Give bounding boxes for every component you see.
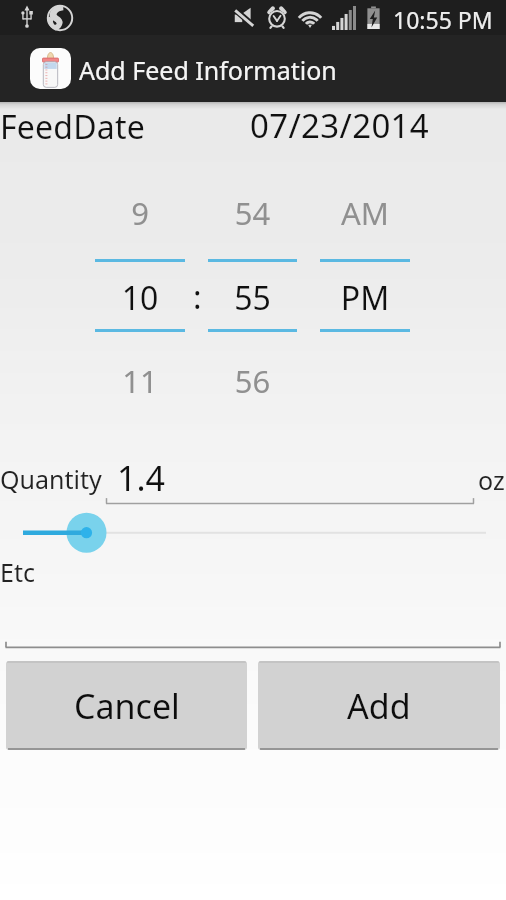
- button[interactable]: Cancel: [6, 661, 247, 750]
- staticText: 55: [208, 276, 297, 320]
- button[interactable]: AM: [320, 180, 410, 405]
- button[interactable]: Add: [258, 661, 500, 750]
- button[interactable]: 54: [208, 180, 297, 405]
- staticText: 10: [95, 276, 185, 320]
- staticText: 54: [208, 192, 297, 234]
- button[interactable]: Quantity slider: [0, 512, 506, 552]
- staticText: 10:55 PM: [393, 4, 493, 35]
- staticText: 9: [95, 192, 185, 234]
- staticText: 07/23/2014: [250, 103, 430, 148]
- staticText: oz: [478, 463, 505, 497]
- staticText: 11: [95, 360, 185, 402]
- staticText: PM: [320, 276, 410, 320]
- button[interactable]: Add Feed Information: [0, 35, 506, 102]
- staticText: AM: [320, 192, 410, 234]
- staticText: Quantity: [0, 462, 102, 496]
- staticText: 1.4: [117, 455, 166, 501]
- staticText: :: [193, 275, 202, 319]
- button[interactable]: 9: [95, 180, 185, 405]
- staticText: 56: [208, 360, 297, 402]
- staticText: Etc: [0, 555, 35, 589]
- staticText: FeedDate: [0, 105, 145, 149]
- staticText: Add Feed Information: [79, 53, 337, 87]
- staticText: Cancel: [74, 683, 180, 729]
- button[interactable]: [0, 600, 506, 660]
- staticText: Add: [347, 683, 411, 729]
